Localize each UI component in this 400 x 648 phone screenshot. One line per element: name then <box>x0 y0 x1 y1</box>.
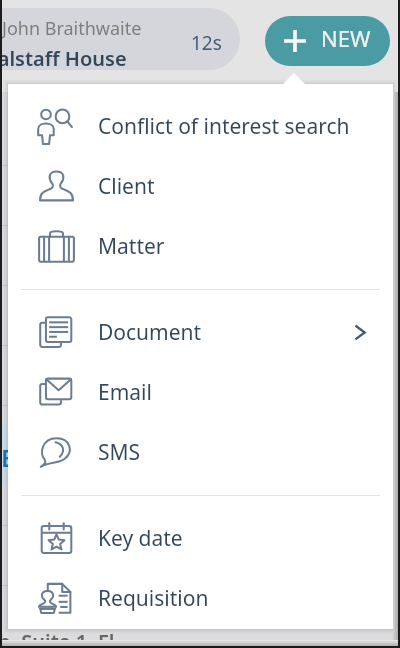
button[interactable]: Conflict of interest search <box>8 96 393 156</box>
button[interactable]: Client <box>8 156 393 216</box>
staticText: Conflict of interest search <box>98 112 350 141</box>
staticText: b. Suite 1, Fl... <box>0 628 131 648</box>
button[interactable]: John Braithwaite <box>0 8 240 70</box>
staticText: E <box>1 441 15 474</box>
button[interactable]: Matter <box>8 216 393 276</box>
staticText: Matter <box>98 232 165 261</box>
staticText: Client <box>98 172 155 201</box>
staticText: Email <box>98 378 152 407</box>
button[interactable]: NEW <box>265 16 390 66</box>
button[interactable]: Key date <box>8 508 393 568</box>
button[interactable]: Document <box>8 302 393 362</box>
staticText: SMS <box>98 438 141 467</box>
staticText: Falstaff House <box>0 45 127 70</box>
staticText: NEW <box>321 23 371 53</box>
staticText: Requisition <box>98 584 209 613</box>
staticText: John Braithwaite <box>2 16 142 41</box>
staticText: 12s <box>191 30 222 56</box>
button[interactable]: Email <box>8 362 393 422</box>
staticText: Document <box>98 318 202 347</box>
staticText: Key date <box>98 524 183 553</box>
button[interactable]: SMS <box>8 422 393 482</box>
button[interactable]: Requisition <box>8 568 393 628</box>
